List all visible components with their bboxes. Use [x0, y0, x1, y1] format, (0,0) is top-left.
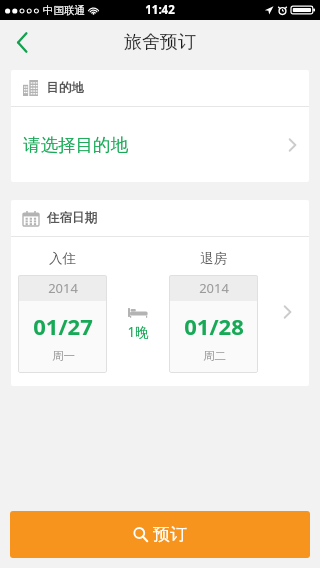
button[interactable]: 请选择目的地	[11, 107, 309, 182]
button[interactable]: Back	[0, 20, 44, 64]
staticText: 周二	[203, 349, 226, 363]
staticText: 1晚	[127, 323, 149, 341]
staticText: 旅舍预订	[124, 31, 196, 54]
staticText: 入住	[49, 250, 76, 267]
staticText: 2014	[199, 279, 229, 297]
staticText: 01/28	[184, 311, 244, 341]
staticText: 请选择目的地	[23, 134, 128, 156]
staticText: 01/27	[33, 311, 93, 341]
staticText: 周一	[52, 349, 75, 363]
staticText: 目的地	[46, 80, 84, 96]
button[interactable]: 预订	[10, 511, 310, 558]
staticText: 退房	[200, 250, 227, 267]
staticText: 11:42	[145, 2, 175, 18]
button[interactable]: 入住	[11, 237, 309, 386]
staticText: 中国联通	[43, 4, 85, 17]
staticText: 住宿日期	[47, 210, 97, 226]
staticText: 预订	[153, 524, 187, 545]
staticText: 2014	[48, 279, 78, 297]
